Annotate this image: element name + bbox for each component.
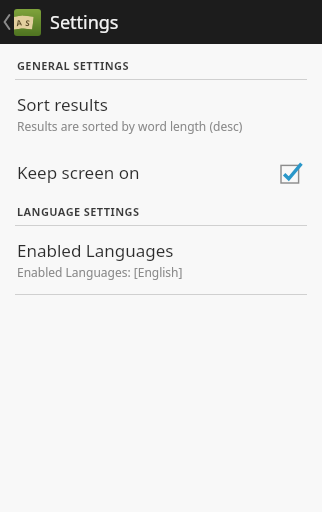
button[interactable]: Sort results — [0, 80, 322, 136]
staticText: LANGUAGE SETTINGS — [17, 204, 140, 219]
staticText: Enabled Languages: [English] — [17, 264, 183, 280]
staticText: S — [24, 17, 31, 28]
button[interactable]: Enabled Languages — [0, 226, 322, 282]
staticText: A — [15, 16, 23, 28]
staticText: Results are sorted by word length (desc) — [17, 118, 243, 134]
button[interactable]: Navigate up, Settings — [0, 0, 322, 44]
staticText: Sort results — [17, 93, 108, 116]
button[interactable]: Keep screen on — [0, 150, 322, 194]
staticText: Settings — [50, 10, 119, 35]
staticText: GENERAL SETTINGS — [17, 58, 129, 73]
staticText: Enabled Languages — [17, 239, 174, 262]
staticText: Keep screen on — [17, 161, 281, 184]
